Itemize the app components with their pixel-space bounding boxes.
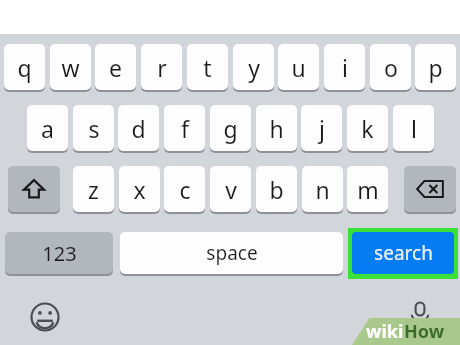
- staticText: h: [269, 113, 284, 144]
- button[interactable]: o: [370, 44, 411, 90]
- staticText: i: [342, 52, 348, 83]
- button[interactable]: v: [210, 166, 251, 212]
- staticText: e: [109, 52, 122, 83]
- button[interactable]: z: [73, 166, 114, 212]
- button[interactable]: s: [73, 105, 114, 151]
- button[interactable]: e: [95, 44, 136, 90]
- staticText: space: [206, 240, 258, 266]
- button[interactable]: u: [278, 44, 319, 90]
- button[interactable]: y: [233, 44, 274, 90]
- staticText: n: [315, 174, 330, 205]
- staticText: f: [181, 113, 189, 144]
- staticText: g: [223, 113, 238, 144]
- staticText: b: [269, 174, 284, 205]
- staticText: z: [88, 174, 99, 205]
- staticText: a: [41, 113, 54, 144]
- staticText: d: [131, 113, 146, 144]
- staticText: j: [319, 113, 325, 144]
- button[interactable]: x: [119, 166, 160, 212]
- button[interactable]: Emoji: [26, 298, 64, 336]
- staticText: r: [157, 52, 167, 83]
- button[interactable]: w: [50, 44, 91, 90]
- button[interactable]: search: [352, 232, 454, 274]
- staticText: l: [411, 113, 417, 144]
- staticText: k: [361, 113, 374, 144]
- button[interactable]: n: [302, 166, 343, 212]
- button[interactable]: h: [256, 105, 297, 151]
- button[interactable]: j: [301, 105, 342, 151]
- button[interactable]: Voice input: [402, 296, 438, 332]
- staticText: v: [225, 174, 237, 205]
- staticText: m: [357, 174, 379, 205]
- button[interactable]: q: [4, 44, 45, 90]
- button[interactable]: b: [256, 166, 297, 212]
- button[interactable]: 123: [5, 232, 113, 274]
- button[interactable]: l: [393, 105, 434, 151]
- staticText: t: [203, 52, 212, 83]
- staticText: w: [61, 52, 80, 83]
- button[interactable]: g: [210, 105, 251, 151]
- button[interactable]: i: [324, 44, 365, 90]
- staticText: x: [133, 174, 146, 205]
- staticText: p: [428, 52, 443, 83]
- button[interactable]: d: [118, 105, 159, 151]
- button[interactable]: a: [27, 105, 68, 151]
- button[interactable]: m: [347, 166, 388, 212]
- staticText: y: [248, 52, 260, 83]
- staticText: u: [291, 52, 306, 83]
- button[interactable]: f: [164, 105, 205, 151]
- staticText: s: [88, 113, 100, 144]
- button[interactable]: space: [120, 232, 343, 274]
- button[interactable]: r: [141, 44, 182, 90]
- staticText: wiki: [366, 319, 404, 344]
- staticText: q: [17, 52, 32, 83]
- button[interactable]: Delete: [404, 166, 456, 212]
- button[interactable]: k: [347, 105, 388, 151]
- staticText: 123: [42, 240, 77, 267]
- staticText: How: [404, 319, 445, 344]
- staticText: search: [374, 240, 433, 266]
- button[interactable]: c: [164, 166, 205, 212]
- staticText: o: [384, 52, 398, 83]
- button[interactable]: p: [415, 44, 456, 90]
- staticText: c: [179, 174, 191, 205]
- button[interactable]: Shift: [8, 166, 60, 212]
- button[interactable]: t: [187, 44, 228, 90]
